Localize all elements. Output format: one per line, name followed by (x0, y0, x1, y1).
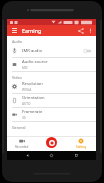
staticText: 30 (22, 116, 26, 120)
button[interactable]: Start recording (46, 137, 57, 148)
button[interactable]: Back (23, 151, 32, 160)
button[interactable]: Home (47, 151, 56, 160)
staticText: General (12, 125, 26, 130)
staticText: IMR audio (22, 48, 43, 54)
button[interactable]: Toggle IMR audio (83, 48, 92, 54)
staticText: Earning (22, 27, 42, 34)
button[interactable]: Setting (66, 136, 96, 151)
staticText: Resolution (22, 81, 43, 87)
staticText: MIC (22, 66, 28, 70)
staticText: Setting (76, 145, 86, 149)
staticText: Framerate (22, 109, 43, 115)
staticText: Audio source (22, 59, 48, 65)
button[interactable]: Framerate (7, 108, 96, 121)
button[interactable]: Resolution (7, 80, 96, 93)
button[interactable]: Recent apps (72, 151, 81, 160)
staticText: Recorded (15, 145, 29, 149)
staticText: Video (12, 75, 22, 80)
button[interactable]: Open navigation drawer (10, 26, 19, 35)
button[interactable]: Audio source (7, 58, 96, 71)
button[interactable]: Recorded (7, 136, 36, 151)
button[interactable]: Orientation (7, 94, 96, 107)
staticText: Audio (12, 39, 23, 44)
button[interactable]: More options (86, 26, 95, 35)
staticText: WVGA (22, 88, 32, 92)
button[interactable]: Share (76, 26, 86, 36)
button[interactable]: IMR audio (7, 44, 96, 57)
staticText: AUTO (22, 102, 31, 106)
staticText: Orientation (22, 95, 45, 101)
